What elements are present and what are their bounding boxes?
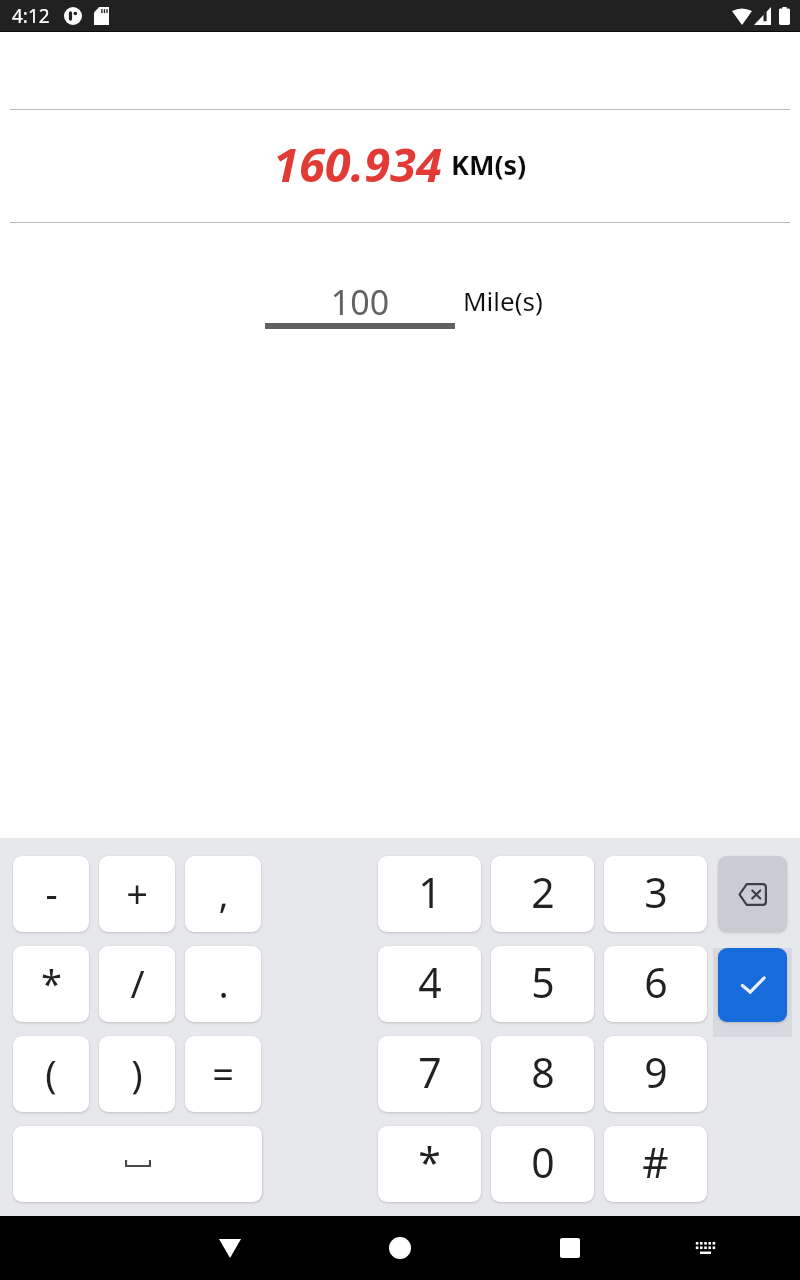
button[interactable]: * — [378, 1126, 481, 1202]
button[interactable]: 0 — [491, 1126, 594, 1202]
staticText: 6 — [644, 954, 668, 1010]
staticText: 5 — [531, 954, 555, 1010]
staticText: 3 — [644, 864, 668, 920]
staticText: 4:12 — [12, 3, 50, 29]
button[interactable]: . — [185, 946, 261, 1022]
staticText: 0 — [531, 1134, 555, 1190]
button[interactable]: 4 — [378, 946, 481, 1022]
staticText: 9 — [644, 1044, 668, 1100]
button[interactable]: - — [13, 856, 89, 932]
staticText: 2 — [531, 864, 555, 920]
staticText: * — [418, 1134, 441, 1190]
button[interactable]: # — [604, 1126, 707, 1202]
button[interactable]: Backspace — [718, 856, 787, 932]
button[interactable]: Recent apps — [540, 1218, 600, 1278]
staticText: KM(s) — [451, 146, 527, 183]
button[interactable]: 2 — [491, 856, 594, 932]
button[interactable]: 3 — [604, 856, 707, 932]
button[interactable]: 6 — [604, 946, 707, 1022]
staticText: 8 — [531, 1044, 555, 1100]
staticText: 7 — [418, 1044, 442, 1100]
button[interactable]: , — [185, 856, 261, 932]
button[interactable]: 5 — [491, 946, 594, 1022]
button[interactable]: Home — [370, 1218, 430, 1278]
staticText: . — [218, 957, 229, 1009]
staticText: ( — [45, 1047, 57, 1099]
button[interactable]: 9 — [604, 1036, 707, 1112]
button[interactable]: ( — [13, 1036, 89, 1112]
button[interactable]: ) — [99, 1036, 175, 1112]
button[interactable]: Amount to convert — [265, 277, 455, 331]
button[interactable]: 7 — [378, 1036, 481, 1112]
staticText: , — [218, 867, 229, 919]
button[interactable]: * — [13, 946, 89, 1022]
staticText: # — [642, 1134, 669, 1190]
button[interactable]: Back — [200, 1218, 260, 1278]
staticText: - — [45, 867, 58, 919]
button[interactable]: + — [99, 856, 175, 932]
button[interactable]: 8 — [491, 1036, 594, 1112]
staticText: 100 — [265, 279, 455, 325]
staticText: + — [126, 867, 148, 919]
staticText: / — [130, 957, 145, 1009]
staticText: ) — [131, 1047, 143, 1099]
button[interactable]: / — [99, 946, 175, 1022]
staticText: = — [212, 1047, 234, 1099]
button[interactable]: Enter — [718, 948, 787, 1022]
button[interactable]: Space — [13, 1126, 262, 1202]
button[interactable]: Mile(s) — [463, 283, 543, 318]
staticText: 1 — [418, 864, 442, 920]
button[interactable]: = — [185, 1036, 261, 1112]
button[interactable]: 1 — [378, 856, 481, 932]
staticText: 4 — [418, 954, 442, 1010]
staticText: * — [41, 957, 62, 1009]
staticText: 160.934 — [273, 132, 442, 196]
button[interactable]: Switch keyboard — [675, 1218, 735, 1278]
